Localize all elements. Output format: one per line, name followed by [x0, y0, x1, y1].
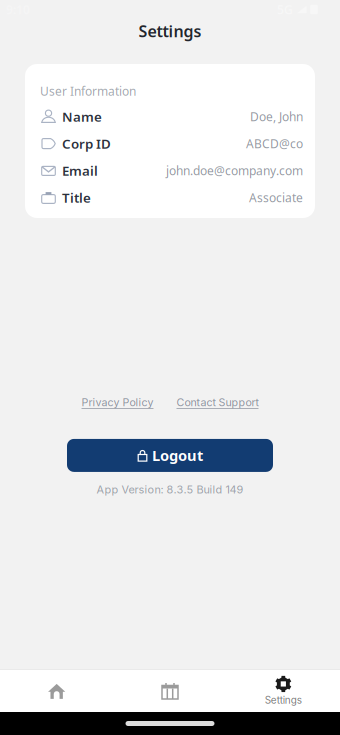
staticText: User Information: [40, 83, 136, 99]
staticText: Title: [62, 189, 91, 206]
staticText: Privacy Policy: [81, 396, 153, 409]
staticText: john.doe@company.com: [166, 162, 303, 178]
button[interactable]: Calendar: [113, 670, 227, 712]
button[interactable]: Home: [0, 670, 113, 712]
button[interactable]: Settings: [227, 670, 340, 712]
staticText: Corp ID: [62, 135, 111, 152]
staticText: Doe, John: [250, 108, 303, 124]
staticText: App Version: 8.3.5 Build 149: [96, 483, 243, 496]
staticText: Email: [62, 162, 98, 179]
staticText: Settings: [138, 20, 201, 42]
staticText: Contact Support: [176, 396, 258, 409]
button[interactable]: Privacy Policy: [81, 396, 153, 409]
staticText: Name: [62, 108, 102, 125]
staticText: Associate: [249, 189, 303, 205]
button[interactable]: Logout: [67, 439, 273, 472]
staticText: Settings: [265, 694, 302, 706]
staticText: ABCD@co: [246, 135, 303, 151]
staticText: Logout: [152, 446, 203, 465]
button[interactable]: Contact Support: [176, 396, 258, 409]
